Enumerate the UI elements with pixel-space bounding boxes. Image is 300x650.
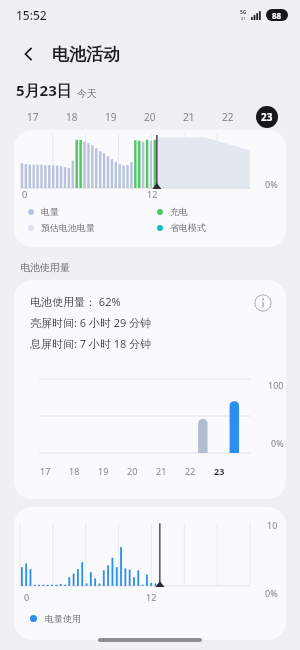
staticText: 电量 xyxy=(41,206,59,217)
staticText: 20 xyxy=(127,465,138,477)
staticText: 0% xyxy=(271,437,284,449)
staticText: 电池使用量： 62% xyxy=(30,294,121,309)
staticText: 0% xyxy=(265,587,278,599)
staticText: 18 xyxy=(69,465,80,477)
staticText: 20 xyxy=(144,110,156,124)
button[interactable]: 返回 xyxy=(12,37,46,71)
staticText: 电量使用 xyxy=(45,613,81,624)
staticText: 电池活动 xyxy=(52,44,120,65)
staticText: 充电 xyxy=(170,206,188,217)
staticText: 15:52 xyxy=(16,7,47,23)
staticText: 12 xyxy=(147,188,158,200)
staticText: 12 xyxy=(146,591,157,603)
staticText: 息屏时间: 7 小时 18 分钟 xyxy=(30,336,152,351)
staticText: 10 xyxy=(267,519,278,531)
staticText: 19 xyxy=(105,110,117,124)
staticText: 预估电池电量 xyxy=(41,222,95,233)
staticText: 省电模式 xyxy=(170,222,206,233)
staticText: 亮屏时间: 6 小时 29 分钟 xyxy=(30,315,152,330)
staticText: 88 xyxy=(272,10,282,21)
button[interactable]: 电池使用量： 62% xyxy=(14,280,286,499)
staticText: 22 xyxy=(222,110,234,124)
staticText: 5G xyxy=(240,9,247,16)
staticText: 5月23日 xyxy=(16,80,72,100)
button[interactable]: 23 xyxy=(256,106,278,128)
staticText: 0% xyxy=(265,178,278,190)
staticText: 电池使用量 xyxy=(20,261,70,274)
staticText: 100 xyxy=(268,379,284,391)
staticText: 21 xyxy=(156,465,167,477)
staticText: 21 xyxy=(183,110,195,124)
staticText: 今天 xyxy=(77,87,97,100)
button[interactable]: 信息 xyxy=(254,294,272,312)
staticText: 19 xyxy=(98,465,109,477)
staticText: 22 xyxy=(185,465,196,477)
staticText: 0 xyxy=(24,591,30,603)
staticText: 18 xyxy=(66,110,78,124)
staticText: 17 xyxy=(40,465,51,477)
button[interactable]: 0 xyxy=(14,130,286,247)
staticText: 0 xyxy=(22,188,28,200)
staticText: 17 xyxy=(27,110,39,124)
button[interactable]: 0 xyxy=(14,507,286,640)
staticText: 41 xyxy=(241,16,246,21)
staticText: 23 xyxy=(261,110,273,124)
staticText: 23 xyxy=(214,465,225,477)
